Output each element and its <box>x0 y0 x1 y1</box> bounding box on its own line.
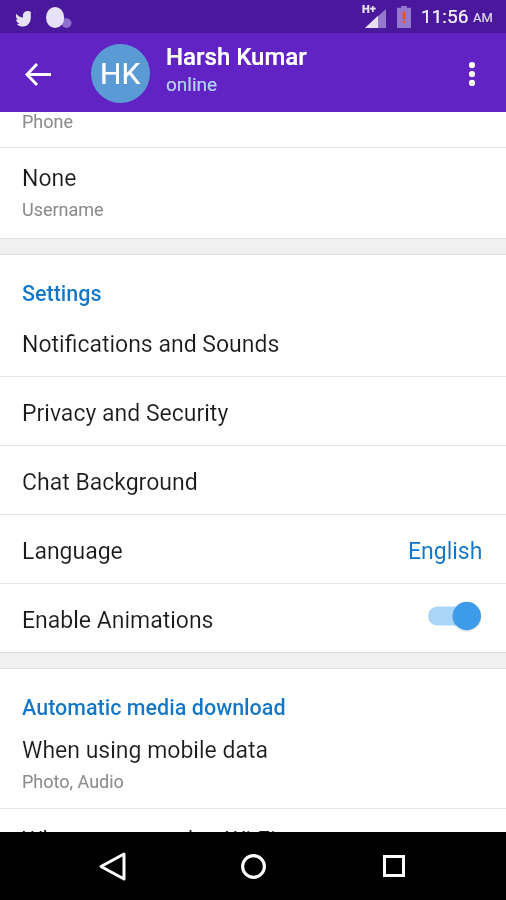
staticText: Photo, Audio <box>22 771 124 792</box>
button[interactable]: When using mobile data <box>0 722 506 808</box>
button[interactable]: When connected to Wi-Fi <box>0 809 506 877</box>
button[interactable]: Recent apps <box>354 832 434 900</box>
staticText: Settings <box>22 281 102 306</box>
staticText: When connected to Wi-Fi <box>22 827 276 854</box>
staticText: None <box>22 165 77 192</box>
staticText: Phone <box>22 111 74 132</box>
staticText: online <box>166 73 218 95</box>
button[interactable]: Chat Background <box>0 446 506 514</box>
button[interactable]: Home <box>213 832 293 900</box>
button[interactable]: More options <box>444 46 500 102</box>
button[interactable]: None <box>0 148 506 238</box>
button[interactable]: Language <box>0 515 506 583</box>
button[interactable]: Enable Animations <box>0 584 506 652</box>
staticText: When using mobile data <box>22 737 268 764</box>
staticText: Privacy and Security <box>22 400 229 427</box>
staticText: AM <box>473 10 493 25</box>
staticText: Harsh Kumar <box>166 43 307 71</box>
button[interactable]: Back <box>72 832 152 900</box>
staticText: H+ <box>362 3 376 16</box>
staticText: Automatic media download <box>22 695 286 720</box>
staticText: Enable Animations <box>22 607 214 634</box>
staticText: Chat Background <box>22 469 198 496</box>
button[interactable]: Notifications and Sounds <box>0 308 506 376</box>
staticText: Notifications and Sounds <box>22 331 280 358</box>
staticText: HK <box>100 56 141 91</box>
staticText: 11:56 <box>421 5 469 27</box>
button[interactable]: Back <box>10 46 66 102</box>
staticText: Language <box>22 538 123 565</box>
button[interactable]: Privacy and Security <box>0 377 506 445</box>
staticText: Username <box>22 199 104 220</box>
staticText: English <box>408 538 483 565</box>
